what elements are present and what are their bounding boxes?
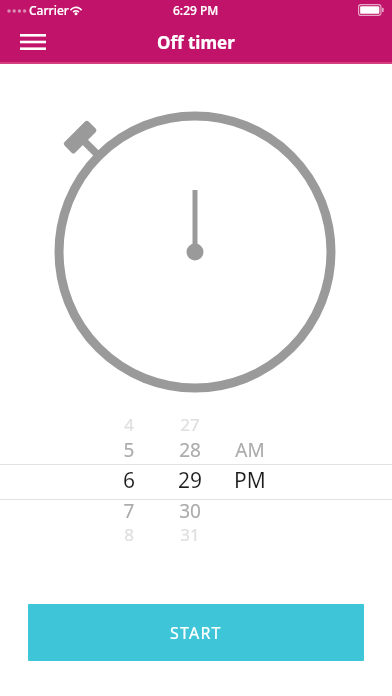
staticText: START [170,622,222,644]
staticText: 30 [155,498,225,524]
staticText: 28 [155,437,225,463]
staticText: 4 [94,413,164,436]
staticText: Off timer [157,31,235,54]
staticText: 31 [155,523,225,546]
staticText: AM [215,437,285,463]
staticText: Carrier [29,2,69,18]
staticText: 29 [155,466,225,495]
staticText: PM [215,466,285,495]
staticText: 6:29 PM [173,2,219,18]
staticText: 27 [155,413,225,436]
staticText: 6 [94,466,164,495]
button[interactable]: Menu [10,22,56,62]
staticText: 7 [94,498,164,524]
staticText: 8 [94,523,164,546]
button[interactable]: START [28,604,364,661]
staticText: 5 [94,437,164,463]
